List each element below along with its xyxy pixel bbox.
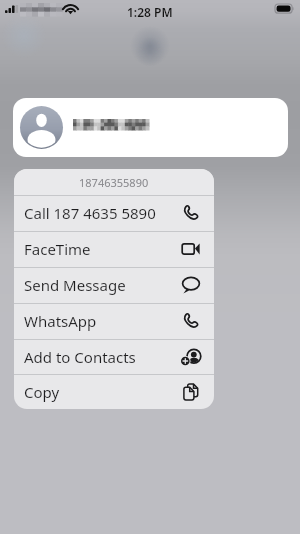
staticText: Copy — [24, 382, 60, 402]
staticText: WhatsApp — [24, 311, 97, 331]
staticText: 18746355890 — [79, 175, 149, 190]
button[interactable]: Add to Contacts — [14, 339, 214, 374]
button[interactable]: Copy — [14, 374, 214, 409]
button[interactable]: WhatsApp — [14, 303, 214, 339]
staticText: Call 187 4635 5890 — [24, 203, 156, 223]
button[interactable]: FaceTime — [14, 231, 214, 267]
staticText: 1:28 PM — [127, 4, 173, 20]
button[interactable]: Send Message — [14, 267, 214, 303]
button[interactable]: Call 187 4635 5890 — [14, 195, 214, 231]
staticText: FaceTime — [24, 239, 91, 259]
staticText: Send Message — [24, 275, 126, 295]
button[interactable] — [13, 98, 288, 157]
staticText: Add to Contacts — [24, 347, 136, 367]
